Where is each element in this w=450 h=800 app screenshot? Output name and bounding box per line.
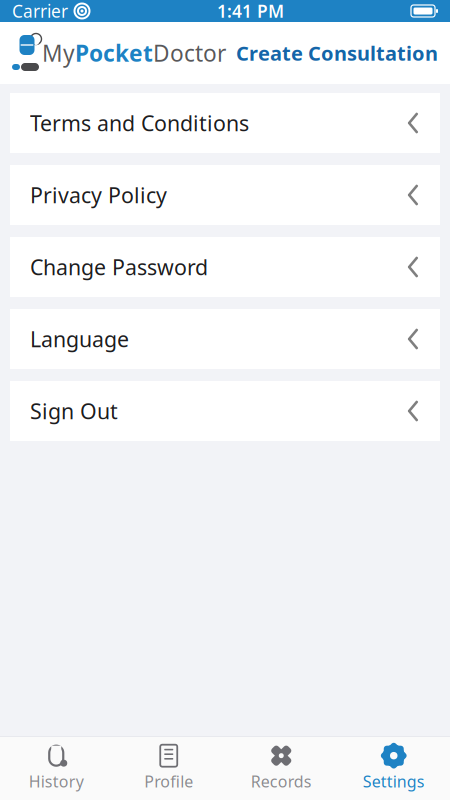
staticText: Language [30, 325, 129, 353]
staticText: My [42, 38, 75, 68]
staticText: Change Password [30, 253, 208, 281]
button[interactable]: Privacy Policy [10, 165, 440, 225]
staticText: Doctor [153, 38, 226, 68]
button[interactable]: Sign Out [10, 381, 440, 441]
staticText: Profile [144, 771, 193, 792]
staticText: Carrier [12, 0, 68, 22]
staticText: Sign Out [30, 397, 118, 425]
staticText: Create Consultation [236, 40, 438, 66]
staticText: Pocket [75, 38, 153, 68]
staticText: 1:41 PM [217, 0, 284, 22]
button[interactable]: Terms and Conditions [10, 93, 440, 153]
button[interactable]: Records [225, 743, 337, 793]
button[interactable]: Profile [112, 743, 225, 793]
button[interactable]: Create Consultation [236, 40, 438, 66]
button[interactable]: Change Password [10, 237, 440, 297]
staticText: Terms and Conditions [30, 109, 249, 137]
button[interactable]: Language [10, 309, 440, 369]
button[interactable]: Settings [337, 743, 450, 793]
button[interactable]: History [0, 743, 112, 793]
staticText: Privacy Policy [30, 181, 167, 209]
button[interactable]: MyPocketDoctor home [12, 33, 226, 73]
staticText: Records [251, 771, 312, 792]
staticText: History [29, 771, 84, 792]
staticText: Settings [363, 771, 425, 792]
